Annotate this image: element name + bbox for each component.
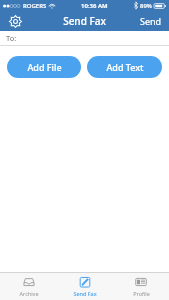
staticText: 10:36 AM: [81, 2, 108, 10]
staticText: Profile: [133, 290, 150, 297]
staticText: Send: [140, 15, 162, 27]
staticText: 89%: [140, 2, 152, 10]
button[interactable]: Add File: [7, 56, 81, 78]
staticText: ROGERS: [23, 2, 47, 10]
button[interactable]: Send Fax: [57, 273, 113, 300]
staticText: Archive: [19, 290, 39, 297]
button[interactable]: To:: [0, 31, 169, 45]
staticText: To:: [6, 33, 17, 43]
staticText: Send Fax: [63, 14, 106, 28]
button[interactable]: Profile: [113, 273, 169, 300]
button[interactable]: Send: [133, 12, 169, 30]
staticText: Send Fax: [73, 290, 97, 297]
button[interactable]: Archive: [0, 273, 57, 300]
button[interactable]: Settings: [6, 12, 24, 30]
button[interactable]: Add Text: [87, 56, 162, 78]
staticText: Add File: [27, 61, 62, 73]
staticText: Add Text: [106, 61, 144, 73]
